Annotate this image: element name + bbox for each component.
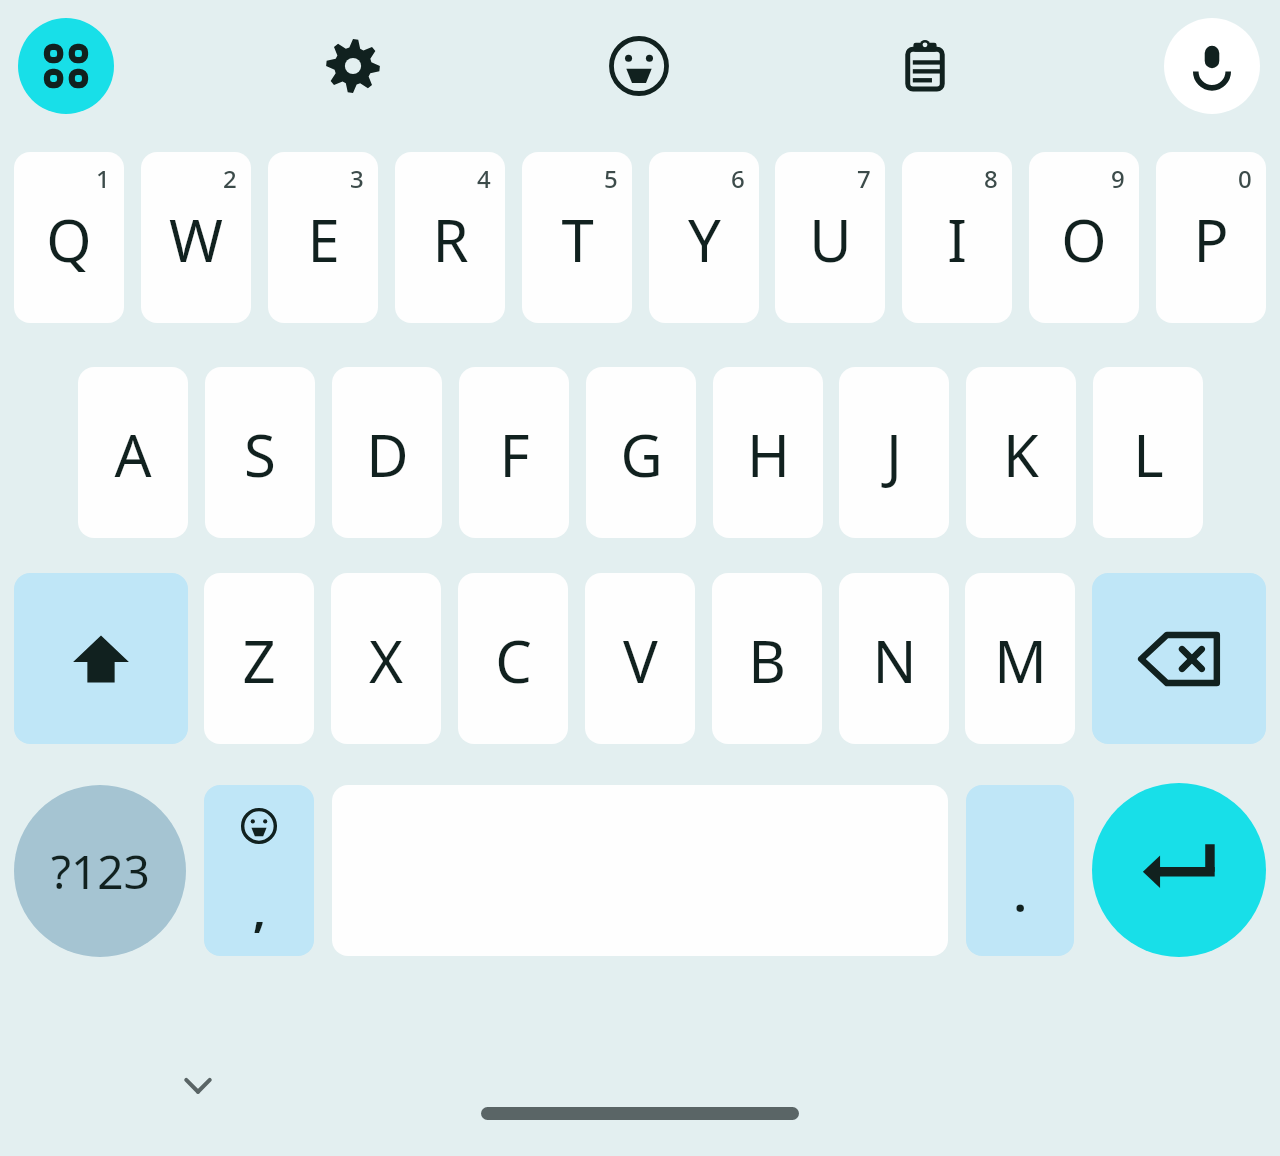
staticText: 6 xyxy=(731,162,745,195)
button[interactable]: D xyxy=(332,367,442,538)
staticText: H xyxy=(747,415,790,494)
staticText: C xyxy=(495,621,532,700)
staticText: X xyxy=(369,621,403,700)
staticText: V xyxy=(623,621,658,700)
staticText: 8 xyxy=(984,162,998,195)
staticText: E xyxy=(307,200,340,279)
staticText: ?123 xyxy=(51,840,150,903)
button[interactable]: N xyxy=(839,573,949,744)
staticText: R xyxy=(432,200,469,279)
staticText: T xyxy=(561,200,594,279)
staticText: B xyxy=(748,621,786,700)
button[interactable]: Hide keyboard xyxy=(164,1051,232,1119)
staticText: 7 xyxy=(857,162,871,195)
staticText: 5 xyxy=(604,162,618,195)
button[interactable]: A xyxy=(78,367,188,538)
button[interactable]: Enter xyxy=(1092,783,1266,957)
button[interactable]: G xyxy=(586,367,696,538)
button[interactable]: Voice input xyxy=(1164,18,1260,114)
button[interactable]: Backspace xyxy=(1092,573,1266,744)
button[interactable]: P xyxy=(1156,152,1266,323)
button[interactable]: K xyxy=(966,367,1076,538)
button[interactable]: U xyxy=(775,152,885,323)
button[interactable]: T xyxy=(522,152,632,323)
staticText: 2 xyxy=(223,162,237,195)
button[interactable]: V xyxy=(585,573,695,744)
button[interactable]: F xyxy=(459,367,569,538)
button[interactable]: L xyxy=(1093,367,1203,538)
button[interactable]: X xyxy=(331,573,441,744)
staticText: G xyxy=(620,415,663,494)
staticText: Z xyxy=(242,621,276,700)
staticText: N xyxy=(872,621,917,700)
staticText: D xyxy=(366,415,409,494)
staticText: 9 xyxy=(1111,162,1125,195)
staticText: J xyxy=(886,415,902,494)
button[interactable]: J xyxy=(839,367,949,538)
staticText: 0 xyxy=(1238,162,1252,195)
button[interactable]: Z xyxy=(204,573,314,744)
button[interactable]: Clipboard xyxy=(877,18,973,114)
staticText: P xyxy=(1193,200,1229,279)
button[interactable]: Emoji and comma xyxy=(204,785,314,956)
staticText: . xyxy=(1014,865,1027,925)
staticText: W xyxy=(169,200,223,279)
button[interactable]: S xyxy=(205,367,315,538)
staticText: M xyxy=(994,621,1047,700)
button[interactable]: ?123 xyxy=(14,785,186,957)
button[interactable]: B xyxy=(712,573,822,744)
staticText: O xyxy=(1061,200,1107,279)
staticText: 4 xyxy=(477,162,491,195)
button[interactable]: Shift xyxy=(14,573,188,744)
button[interactable]: I xyxy=(902,152,1012,323)
button[interactable]: Apps xyxy=(18,18,114,114)
staticText: 1 xyxy=(96,162,110,195)
staticText: S xyxy=(244,415,276,494)
staticText: 3 xyxy=(350,162,364,195)
button[interactable]: Y xyxy=(649,152,759,323)
button[interactable]: Emoji xyxy=(591,18,687,114)
staticText: , xyxy=(253,880,266,940)
staticText: L xyxy=(1133,415,1164,494)
button[interactable]: O xyxy=(1029,152,1139,323)
button[interactable]: E xyxy=(268,152,378,323)
button[interactable]: R xyxy=(395,152,505,323)
staticText: K xyxy=(1003,415,1039,494)
button[interactable]: M xyxy=(965,573,1075,744)
button[interactable]: Q xyxy=(14,152,124,323)
button[interactable]: H xyxy=(713,367,823,538)
staticText: F xyxy=(499,415,530,494)
button[interactable]: W xyxy=(141,152,251,323)
staticText: Y xyxy=(688,200,721,279)
button[interactable]: . xyxy=(966,785,1074,956)
staticText: I xyxy=(947,200,967,279)
button[interactable]: Settings xyxy=(305,18,401,114)
staticText: U xyxy=(809,200,852,279)
staticText: Q xyxy=(46,200,92,279)
staticText: A xyxy=(114,415,152,494)
button[interactable]: C xyxy=(458,573,568,744)
